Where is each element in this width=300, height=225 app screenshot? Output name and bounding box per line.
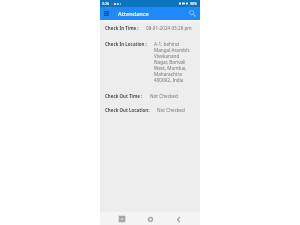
staticText: A-1, behind Mangal Arambh, Vivekanand Na… (154, 41, 191, 83)
staticText: Check In Location : (105, 41, 147, 47)
staticText: Attendance (118, 10, 149, 18)
staticText: Check In Time : (105, 25, 139, 31)
button[interactable]: Search (185, 7, 200, 20)
button[interactable]: Open navigation menu (100, 7, 113, 20)
staticText: 3:26 (102, 1, 110, 6)
staticText: Not Checked (150, 93, 178, 99)
button[interactable]: Back (172, 213, 184, 225)
staticText: 08-01-2024 03:26 pm (146, 25, 192, 31)
button[interactable]: Recent apps (116, 213, 128, 225)
staticText: Not Checked (157, 107, 185, 113)
staticText: Check Out Time : (105, 93, 143, 99)
staticText: 98% (190, 1, 198, 6)
staticText: Check Out Location: (105, 107, 150, 113)
button[interactable]: Home (144, 213, 156, 225)
